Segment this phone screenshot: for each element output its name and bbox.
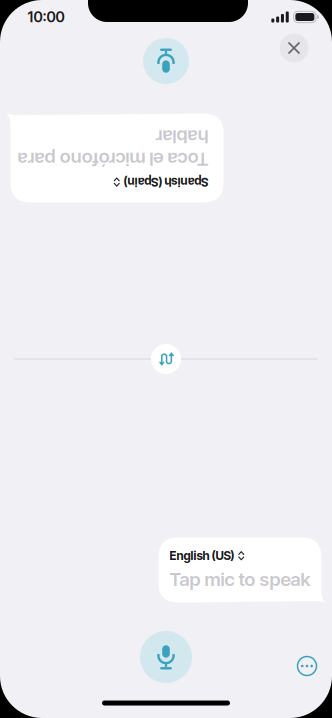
- staticText: English (US): [169, 548, 234, 563]
- button[interactable]: Swap languages: [151, 344, 181, 374]
- button[interactable]: Microphone: [140, 631, 192, 683]
- button[interactable]: Close: [279, 33, 308, 62]
- button[interactable]: More options: [290, 649, 324, 683]
- staticText: 10:00: [27, 8, 64, 26]
- staticText: Toca el micrófono para hablar: [20, 145, 211, 190]
- staticText: Tap mic to speak: [169, 568, 310, 591]
